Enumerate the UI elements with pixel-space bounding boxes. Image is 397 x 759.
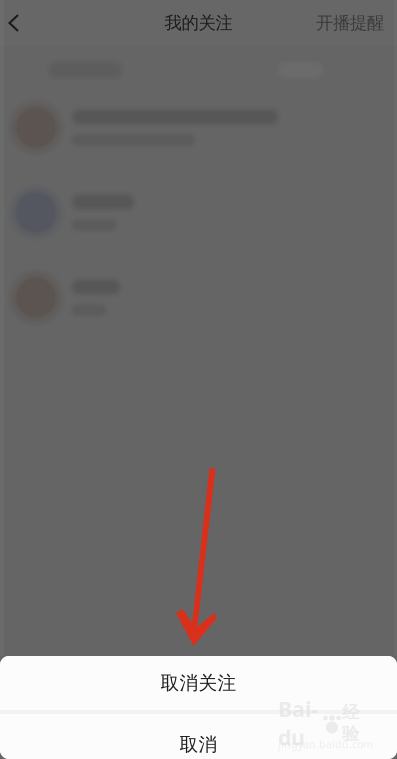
button[interactable]: 取消关注 [0, 656, 397, 710]
staticText: 我的关注 [164, 12, 232, 34]
button[interactable]: Back [0, 0, 40, 46]
staticText: 开播提醒 [316, 12, 384, 34]
staticText: jingyan.baidu.com [278, 737, 373, 751]
staticText: 经验 [342, 702, 359, 744]
staticText: 取消关注 [160, 671, 236, 694]
staticText: Baidu [278, 695, 318, 751]
button[interactable]: 取消 [0, 714, 397, 759]
staticText: 取消 [179, 733, 217, 756]
button[interactable]: 开播提醒 [316, 0, 397, 46]
